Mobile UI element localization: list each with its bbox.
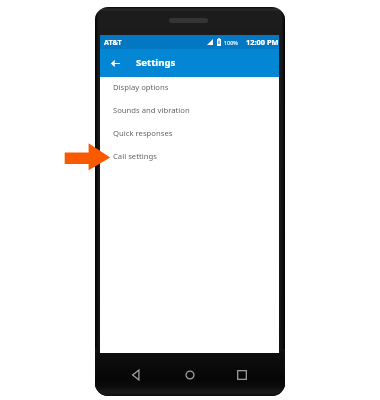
staticText: Call settings	[113, 151, 157, 161]
button[interactable]: Sounds and vibration	[100, 100, 279, 123]
button[interactable]: Display options	[100, 77, 279, 100]
button[interactable]: Recent apps	[236, 369, 248, 381]
button[interactable]: Quick responses	[100, 123, 279, 146]
staticText: Quick responses	[113, 128, 173, 138]
staticText: 12:00 PM	[246, 37, 279, 47]
button[interactable]: Home	[184, 369, 196, 381]
button[interactable]: Back	[107, 55, 123, 71]
button[interactable]: Call settings	[100, 146, 279, 169]
staticText: Settings	[136, 56, 176, 69]
staticText: AT&T	[104, 37, 122, 47]
staticText: Display options	[113, 82, 169, 92]
staticText: 100%	[224, 39, 238, 46]
staticText: Sounds and vibration	[113, 105, 190, 115]
button[interactable]: Back	[130, 369, 142, 381]
